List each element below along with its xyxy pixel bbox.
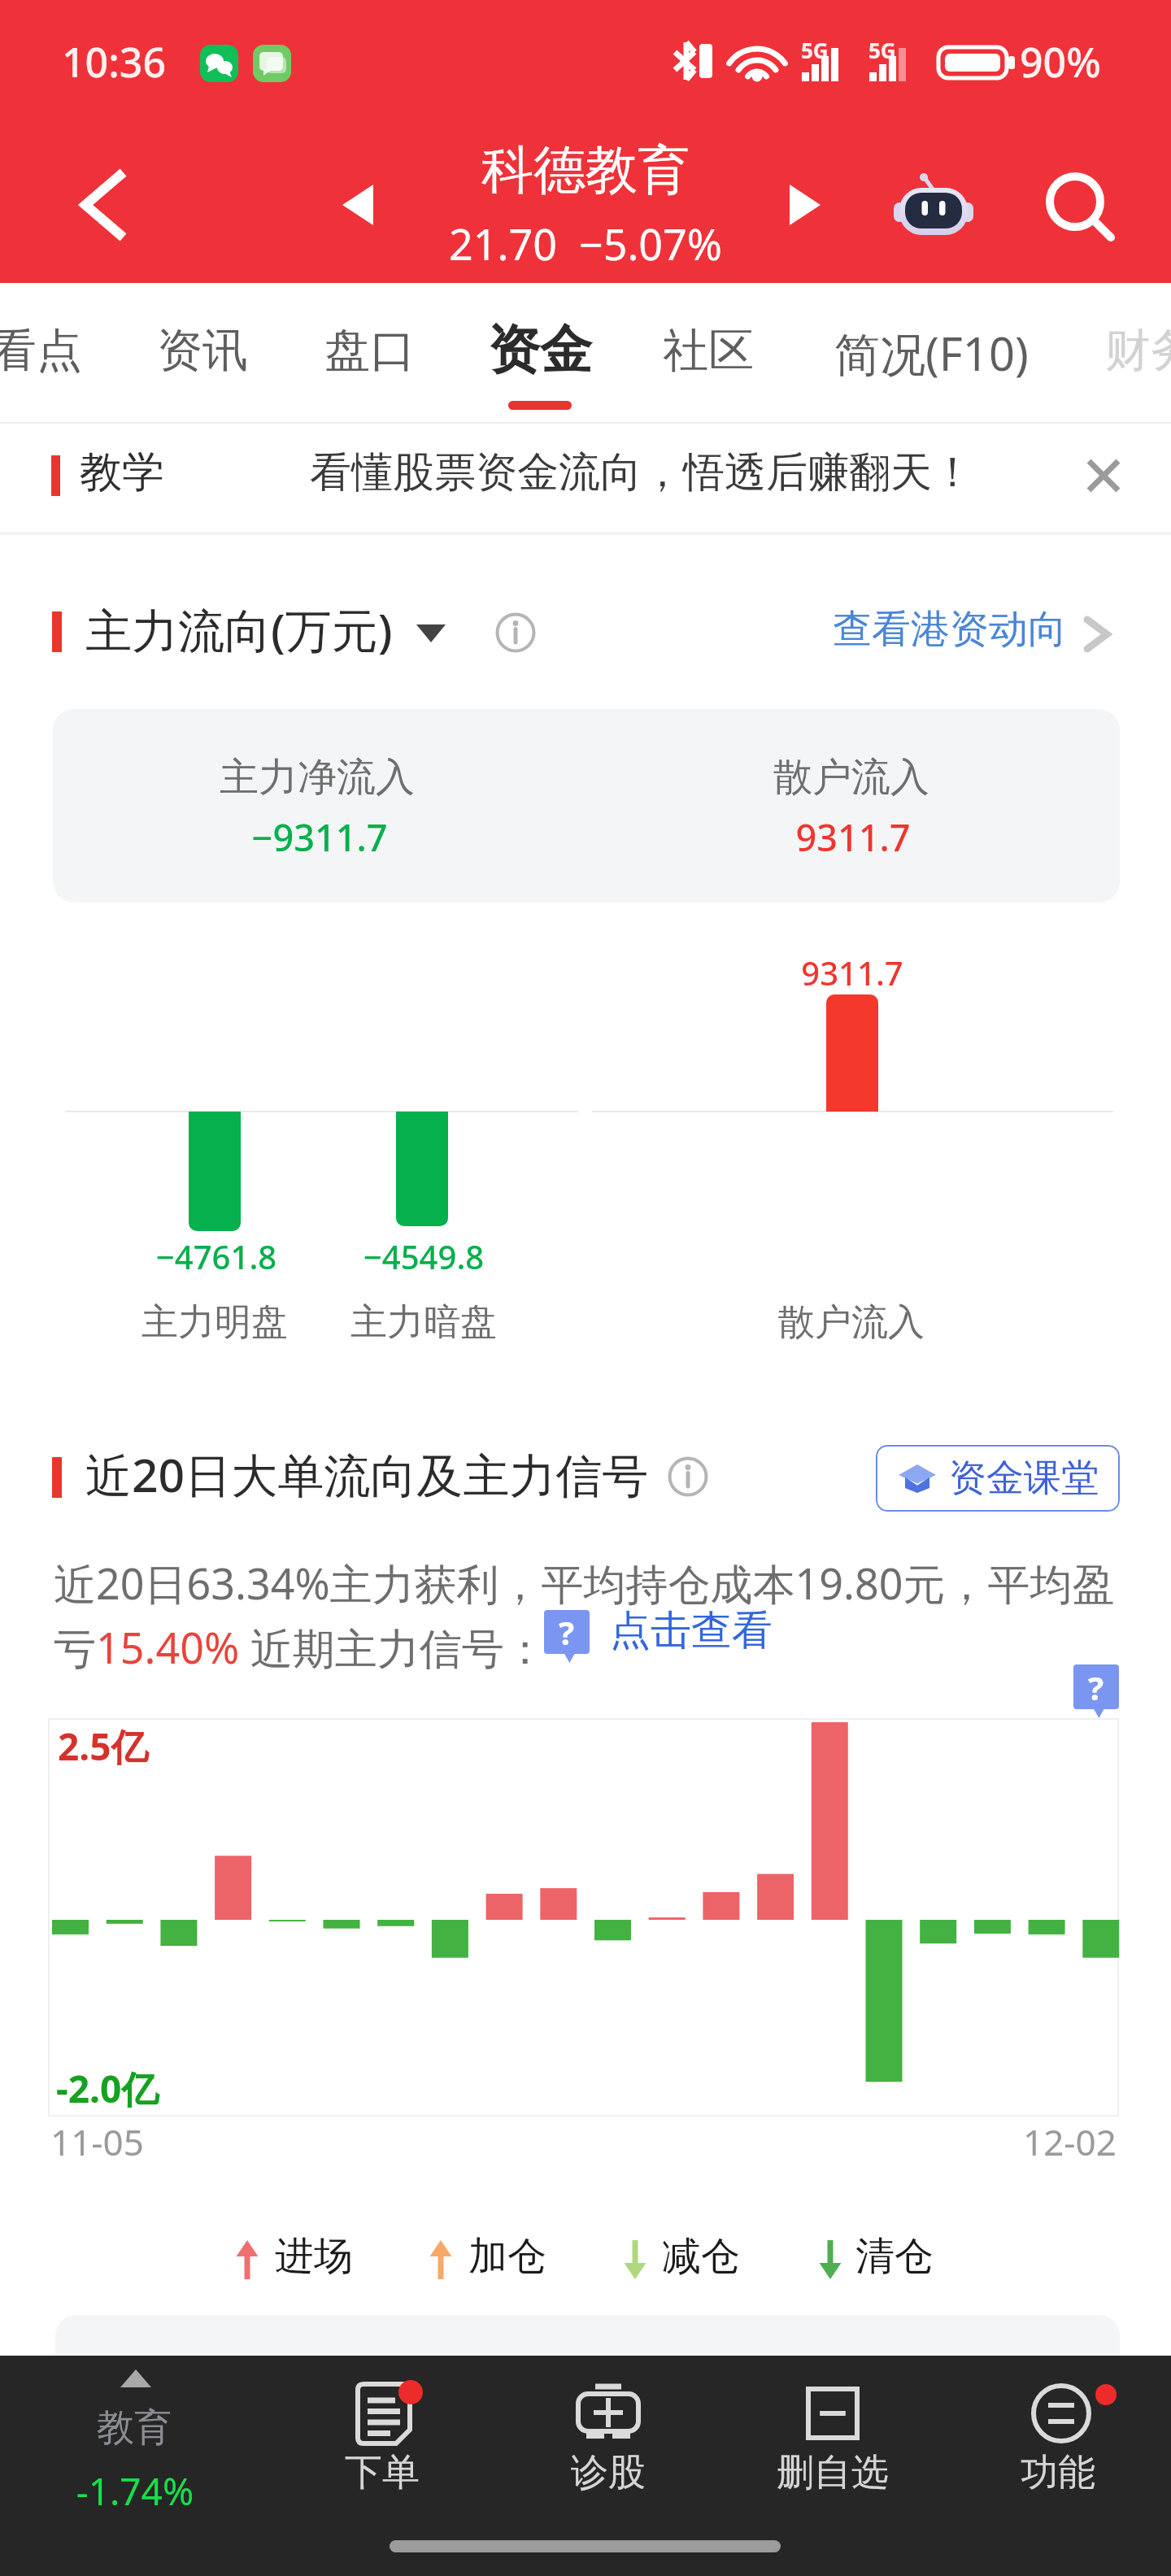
staticText: 散户流入 [689,1299,1014,1346]
button[interactable]: Info [488,605,543,660]
staticText: 10:36 [62,34,166,89]
staticText: −4761.8 [54,1234,379,1278]
button[interactable]: 功能 [960,2358,1156,2513]
staticText: 9311.7 [690,951,1015,994]
button[interactable]: 资金课堂 [876,1445,1120,1512]
button[interactable]: 删自选 [735,2358,930,2513]
staticText: 21.70 −5.07% [301,215,870,272]
button[interactable]: 看点 [0,283,106,405]
staticText: 资讯 [157,322,248,380]
staticText: 财务 [1105,322,1171,380]
button[interactable]: Previous [309,156,407,254]
staticText: 社区 [663,322,754,380]
staticText: 删自选 [711,2449,955,2496]
button[interactable]: 查看港资动向 [821,598,1122,671]
button[interactable]: Search [1030,159,1128,256]
button[interactable]: 资金 [463,283,617,405]
button[interactable]: 社区 [639,283,777,405]
staticText: 9311.7 [650,812,1056,862]
staticText: 盘口 [324,322,416,380]
staticText: 主力净流入 [114,753,520,802]
staticText: −4549.8 [261,1234,586,1278]
staticText: 教育 [12,2404,256,2452]
staticText: 主力流向(万元) [85,598,393,661]
staticText: 减仓 [662,2232,740,2281]
staticText: 近20日63.34%主力获利，平均持仓成本19.80元，平均盈 [54,1554,1115,1612]
staticText: 亏15.40% 近期主力信号： [54,1618,546,1672]
staticText: 5G [868,36,896,64]
staticText: 2.5亿 [58,1721,149,1772]
button[interactable]: AI assistant [885,160,982,258]
staticText: 教学 [80,446,164,499]
staticText: 主力暗盘 [261,1299,586,1346]
button[interactable]: Next [756,156,854,254]
staticText: 主力明盘 [52,1299,377,1346]
staticText: 5G [801,36,829,64]
staticText: 点击查看 [610,1605,773,1656]
button[interactable]: 下单 [285,2358,480,2513]
button[interactable]: 资讯 [133,283,272,405]
staticText: 功能 [936,2449,1171,2496]
button[interactable]: 简况(F10) [809,283,1053,405]
button[interactable]: 点击查看 [608,1610,783,1669]
staticText: 简况(F10) [834,322,1029,384]
staticText: 90% [1020,34,1101,89]
staticText: 看懂股票资金流向，悟透后赚翻天！ [310,446,973,498]
staticText: ? [1088,1665,1104,1709]
button[interactable]: Back [49,151,156,259]
staticText: 查看港资动向 [833,605,1067,654]
staticText: -1.74% [0,2465,298,2517]
staticText: 加仓 [468,2232,546,2281]
staticText: 诊股 [486,2449,730,2496]
button[interactable]: 诊股 [511,2358,706,2513]
staticText: ? [559,1610,575,1654]
staticText: 下单 [260,2449,504,2496]
button[interactable]: Info [660,1449,716,1504]
staticText: 清仓 [855,2232,934,2281]
staticText: 资金课堂 [949,1455,1099,1502]
button[interactable]: Help [1073,1664,1119,1717]
staticText: 12-02 [1023,2117,1117,2166]
staticText: 进场 [275,2232,353,2281]
staticText: 看点 [0,322,82,380]
staticText: -2.0亿 [56,2063,159,2114]
staticText: 近20日大单流向及主力信号 [85,1442,649,1506]
button[interactable]: Close [1057,439,1150,512]
staticText: −9311.7 [116,812,523,862]
staticText: 科德教育 [301,137,870,203]
staticText: 资金 [488,317,592,383]
button[interactable]: 财务 [1082,283,1171,405]
button[interactable]: 教学 [0,424,1171,533]
staticText: 散户流入 [648,753,1055,802]
button[interactable]: 盘口 [301,283,439,405]
staticText: 11-05 [50,2117,144,2166]
button[interactable]: 教育 -1.74% [45,2358,228,2537]
